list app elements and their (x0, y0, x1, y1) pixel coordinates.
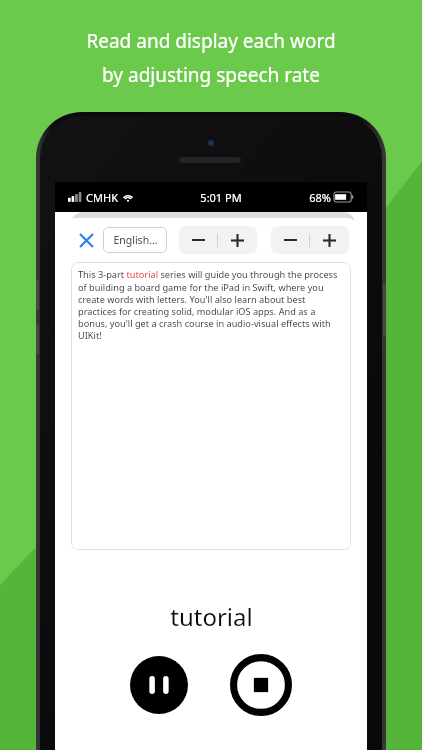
button[interactable]: Pause (128, 654, 190, 716)
button[interactable]: Increase (218, 226, 256, 254)
staticText: This 3-part tutorial series will guide y… (78, 268, 344, 342)
button[interactable]: Decrease (271, 226, 309, 254)
button[interactable]: English... (103, 227, 167, 253)
button[interactable]: Stop (228, 652, 294, 718)
staticText: tutorial (170, 600, 253, 633)
button[interactable]: Decrease (179, 226, 217, 254)
staticText: Read and display each word (86, 28, 336, 54)
staticText: by adjusting speech rate (102, 62, 320, 88)
staticText: CMHK (86, 190, 118, 205)
staticText: English... (113, 233, 158, 247)
button[interactable]: Close (73, 227, 99, 253)
staticText: 5:01 PM (200, 190, 242, 205)
button[interactable]: Increase (310, 226, 348, 254)
staticText: 68% (309, 190, 331, 205)
